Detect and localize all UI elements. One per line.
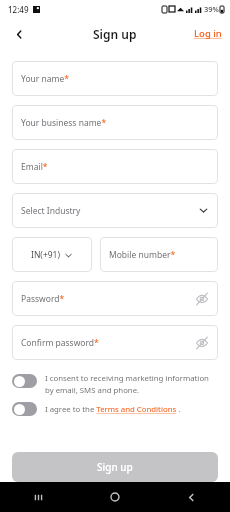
staticText: Sign up — [93, 26, 137, 42]
button[interactable]: Toggle — [12, 402, 37, 416]
staticText: I agree to the Terms and Conditions . — [45, 404, 181, 415]
button[interactable]: Back — [8, 23, 30, 45]
button[interactable]: Back — [153, 482, 230, 512]
button[interactable]: Toggle — [12, 402, 218, 416]
button[interactable]: Select Industry — [12, 193, 218, 228]
other: Show password — [195, 292, 209, 306]
staticText: Your business name* — [21, 117, 107, 129]
staticText: Mobile number* — [109, 249, 176, 261]
staticText: I consent to receiving marketing informa… — [45, 373, 218, 395]
staticText: Sign up — [97, 460, 133, 474]
staticText: Confirm password* — [21, 337, 99, 349]
button[interactable]: Sign up — [12, 452, 218, 482]
button[interactable]: Recent apps — [0, 482, 76, 512]
button[interactable]: Your name* — [12, 61, 218, 96]
staticText: Select Industry — [21, 205, 81, 217]
button[interactable]: Confirm password* — [12, 325, 218, 360]
staticText: Email* — [21, 161, 48, 173]
staticText: 39% — [204, 4, 219, 14]
button[interactable]: Toggle — [12, 373, 218, 395]
button[interactable]: Password* — [12, 281, 218, 316]
staticText: IN(+91) — [31, 249, 61, 261]
button[interactable]: Your business name* — [12, 105, 218, 140]
button[interactable]: Email* — [12, 149, 218, 184]
button[interactable]: IN(+91) — [12, 237, 92, 272]
other: Show password — [195, 336, 209, 350]
button[interactable]: Home — [76, 482, 153, 512]
staticText: Your name* — [21, 73, 69, 85]
staticText: Log in — [194, 27, 222, 40]
button[interactable]: Mobile number* — [100, 237, 218, 272]
button[interactable]: Log in — [194, 27, 222, 40]
staticText: 12:49 — [8, 4, 29, 15]
button[interactable]: Toggle — [12, 374, 37, 388]
staticText: Password* — [21, 293, 65, 305]
